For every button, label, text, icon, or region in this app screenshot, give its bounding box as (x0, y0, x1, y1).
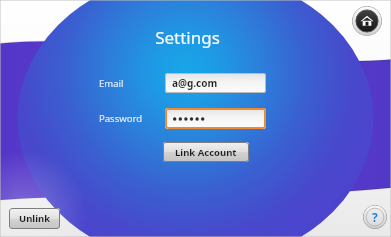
button[interactable]: Unlink (9, 208, 60, 229)
button[interactable]: a@g.com (165, 73, 266, 93)
staticText: ? (372, 209, 378, 225)
staticText: Unlink (19, 212, 51, 225)
staticText: Email (99, 77, 124, 90)
button[interactable]: Home (352, 6, 382, 36)
button[interactable]: Help (363, 205, 387, 229)
staticText: a@g.com (172, 76, 218, 90)
staticText: Link Account (175, 146, 237, 159)
button[interactable] (165, 108, 266, 129)
button[interactable]: Link Account (163, 142, 249, 162)
staticText: Settings (155, 26, 220, 49)
staticText: Password (99, 112, 142, 125)
